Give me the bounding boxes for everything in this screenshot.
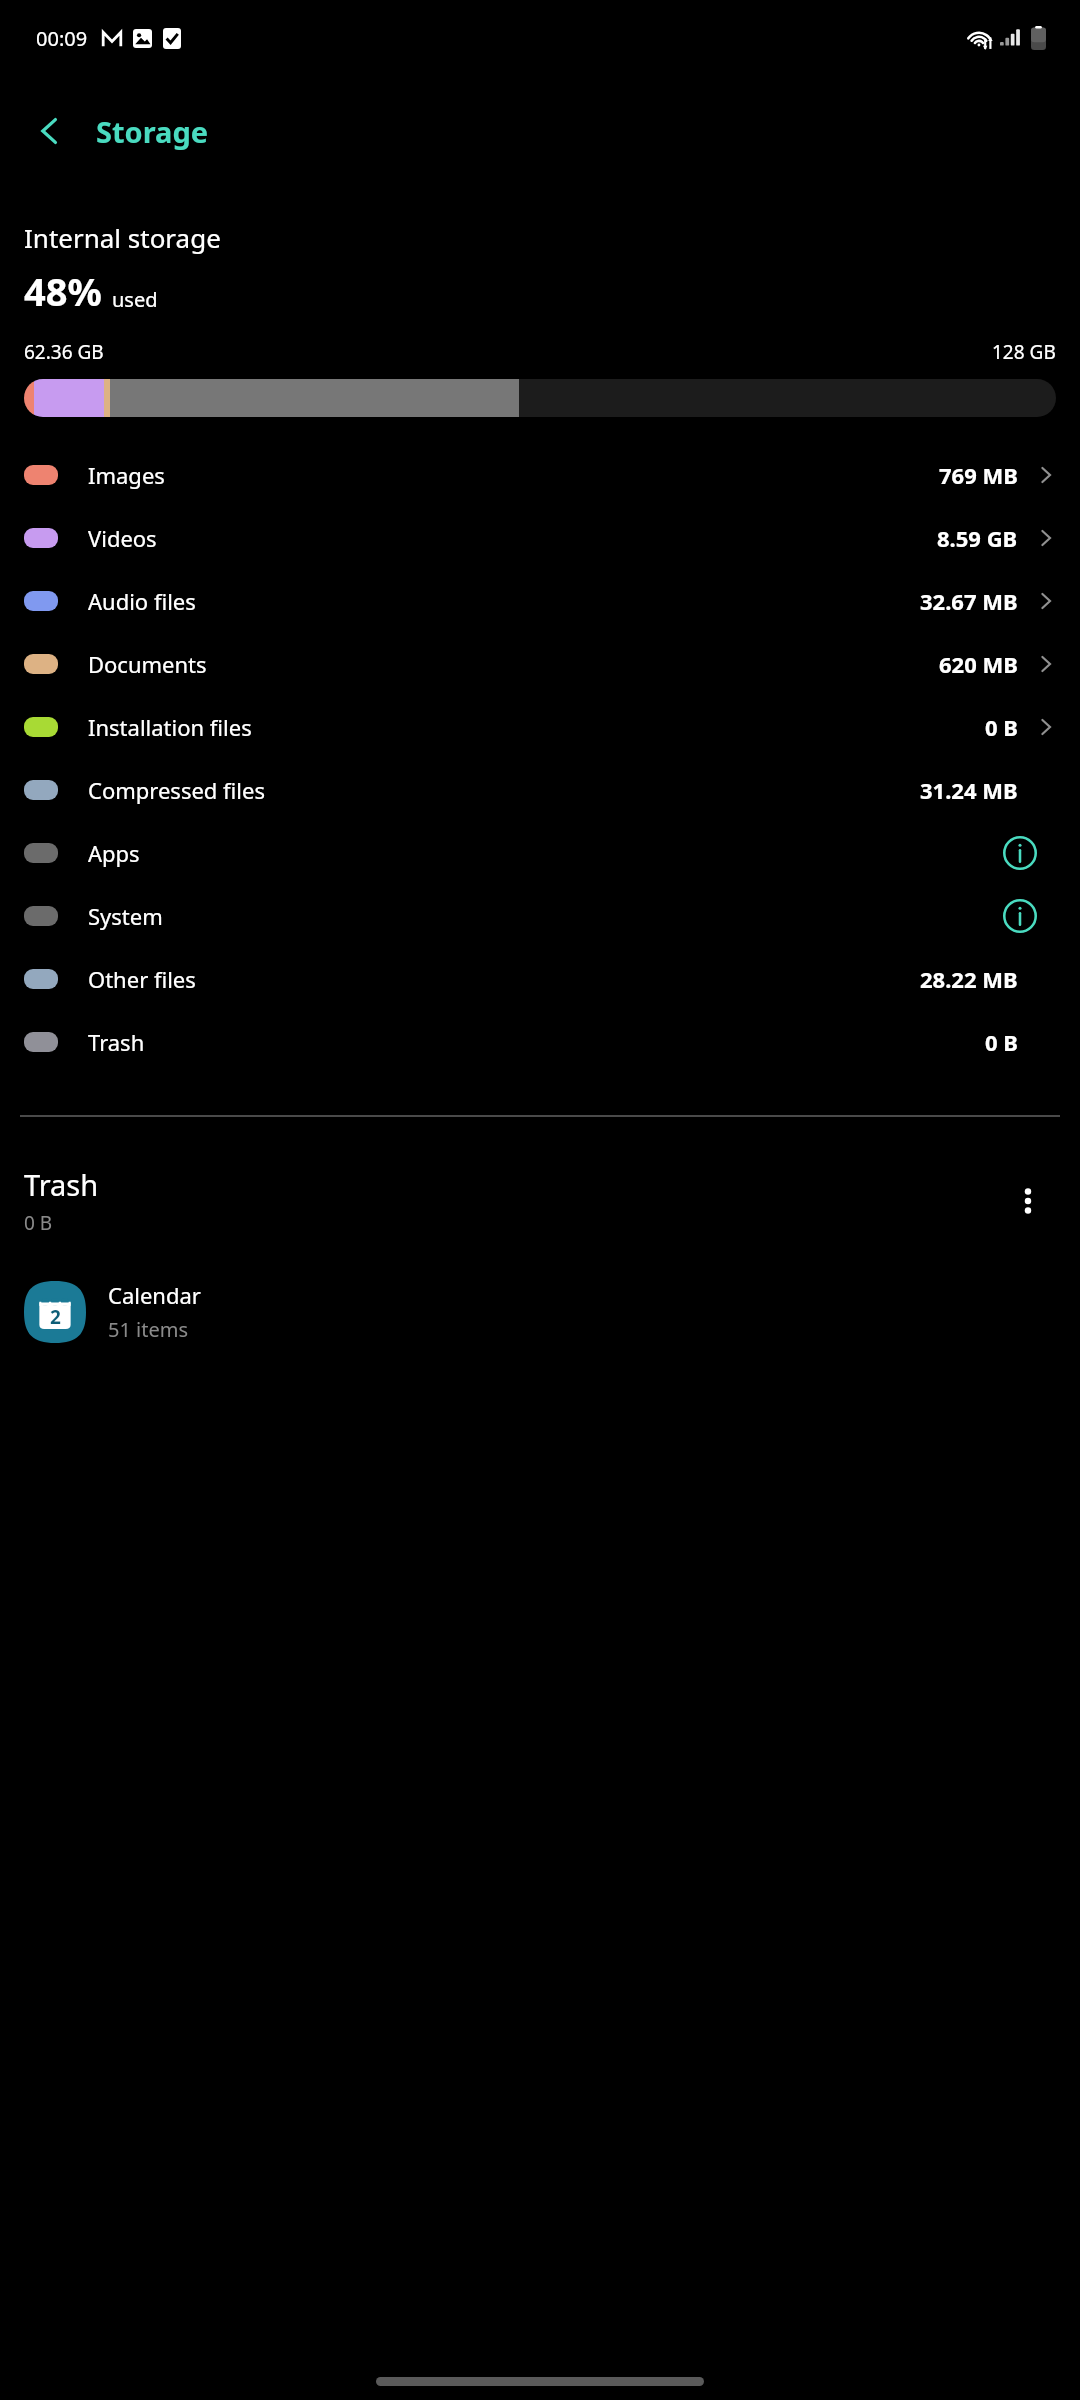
- staticText: 00:09: [36, 25, 88, 52]
- staticText: 0 B: [24, 1210, 53, 1236]
- button[interactable]: Trash: [0, 1010, 1080, 1073]
- button[interactable]: Documents: [0, 632, 1080, 695]
- staticText: 128 GB: [992, 339, 1056, 365]
- staticText: Compressed files: [88, 775, 265, 805]
- staticText: 769 MB: [939, 460, 1018, 490]
- button[interactable]: Images: [0, 443, 1080, 506]
- staticText: Trash: [24, 1165, 99, 1204]
- staticText: 32.67 MB: [920, 586, 1018, 616]
- button[interactable]: More options: [1000, 1173, 1056, 1229]
- button[interactable]: Compressed files: [0, 758, 1080, 821]
- staticText: 2: [50, 1304, 61, 1330]
- staticText: System: [88, 901, 163, 931]
- staticText: Other files: [88, 964, 196, 994]
- staticText: 31.24 MB: [920, 775, 1018, 805]
- staticText: 8.59 GB: [937, 523, 1018, 553]
- button[interactable]: 2: [24, 1280, 1056, 1343]
- button[interactable]: Videos: [0, 506, 1080, 569]
- staticText: Audio files: [88, 586, 196, 616]
- staticText: Videos: [88, 523, 157, 553]
- button[interactable]: Apps: [0, 821, 1080, 884]
- staticText: Documents: [88, 649, 207, 679]
- staticText: Storage: [96, 112, 209, 151]
- staticText: used: [112, 286, 158, 313]
- staticText: Internal storage: [24, 220, 221, 255]
- staticText: 28.22 MB: [920, 964, 1018, 994]
- button[interactable]: Info about Apps: [998, 831, 1042, 875]
- button[interactable]: System: [0, 884, 1080, 947]
- staticText: Calendar: [108, 1280, 201, 1310]
- staticText: Installation files: [88, 712, 252, 742]
- staticText: Trash: [88, 1027, 145, 1057]
- button[interactable]: Trash: [24, 1165, 1056, 1236]
- button[interactable]: Other files: [0, 947, 1080, 1010]
- staticText: 620 MB: [939, 649, 1018, 679]
- staticText: 0 B: [985, 712, 1018, 742]
- button[interactable]: Info about System: [998, 894, 1042, 938]
- staticText: Apps: [88, 838, 140, 868]
- button[interactable]: Audio files: [0, 569, 1080, 632]
- staticText: Images: [88, 460, 165, 490]
- button[interactable]: Back: [18, 99, 82, 163]
- staticText: 51 items: [108, 1316, 189, 1343]
- button[interactable]: Installation files: [0, 695, 1080, 758]
- staticText: 0 B: [985, 1027, 1018, 1057]
- staticText: 48%: [24, 265, 102, 317]
- staticText: 62.36 GB: [24, 339, 104, 365]
